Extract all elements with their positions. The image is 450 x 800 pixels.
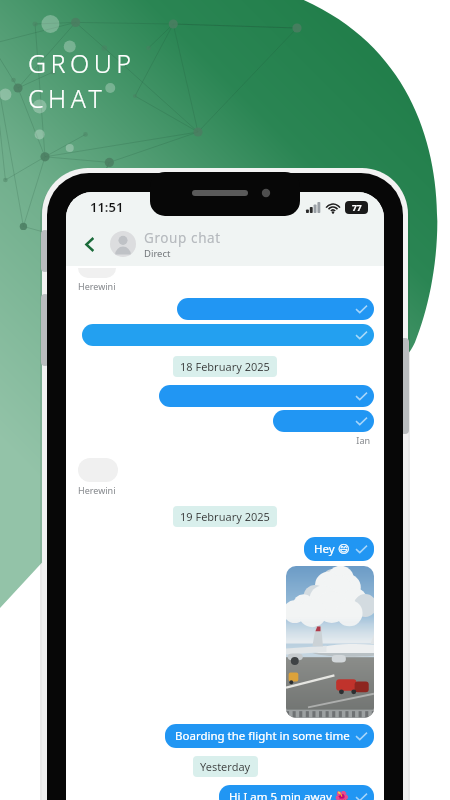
staticText: Herewini xyxy=(78,484,116,496)
staticText: 19 February 2025 xyxy=(180,509,270,524)
button[interactable]: Boarding the flight in some time xyxy=(165,724,374,748)
button[interactable] xyxy=(273,410,374,432)
staticText: Yesterday xyxy=(200,759,251,774)
button[interactable]: Yesterday xyxy=(193,756,258,777)
staticText: CHAT xyxy=(28,81,107,115)
button[interactable] xyxy=(82,324,374,346)
button[interactable] xyxy=(78,268,116,278)
staticText: Ian xyxy=(76,434,370,446)
staticText: Direct xyxy=(144,247,171,260)
button[interactable]: Back xyxy=(66,222,384,266)
button[interactable]: 18 February 2025 xyxy=(173,356,277,377)
staticText: Hi I am 5 min away 🌺 xyxy=(229,789,350,800)
button[interactable]: Hey 😄 xyxy=(304,537,374,561)
staticText: 18 February 2025 xyxy=(180,359,270,374)
button[interactable]: Photo of an airplane at the airport xyxy=(286,566,374,718)
staticText: 11:51 xyxy=(90,198,124,216)
button[interactable] xyxy=(177,298,374,320)
staticText: Herewini xyxy=(78,280,116,292)
staticText: GROUP xyxy=(28,46,136,80)
button[interactable] xyxy=(159,385,374,407)
button[interactable]: 19 February 2025 xyxy=(173,506,277,527)
staticText: Group chat xyxy=(144,229,221,247)
staticText: Hey 😄 xyxy=(314,541,350,557)
button[interactable]: Hi I am 5 min away 🌺 xyxy=(219,785,374,800)
staticText: Boarding the flight in some time xyxy=(175,728,350,744)
button[interactable]: Back xyxy=(78,232,102,256)
button[interactable] xyxy=(78,458,118,482)
staticText: 77 xyxy=(352,202,362,214)
